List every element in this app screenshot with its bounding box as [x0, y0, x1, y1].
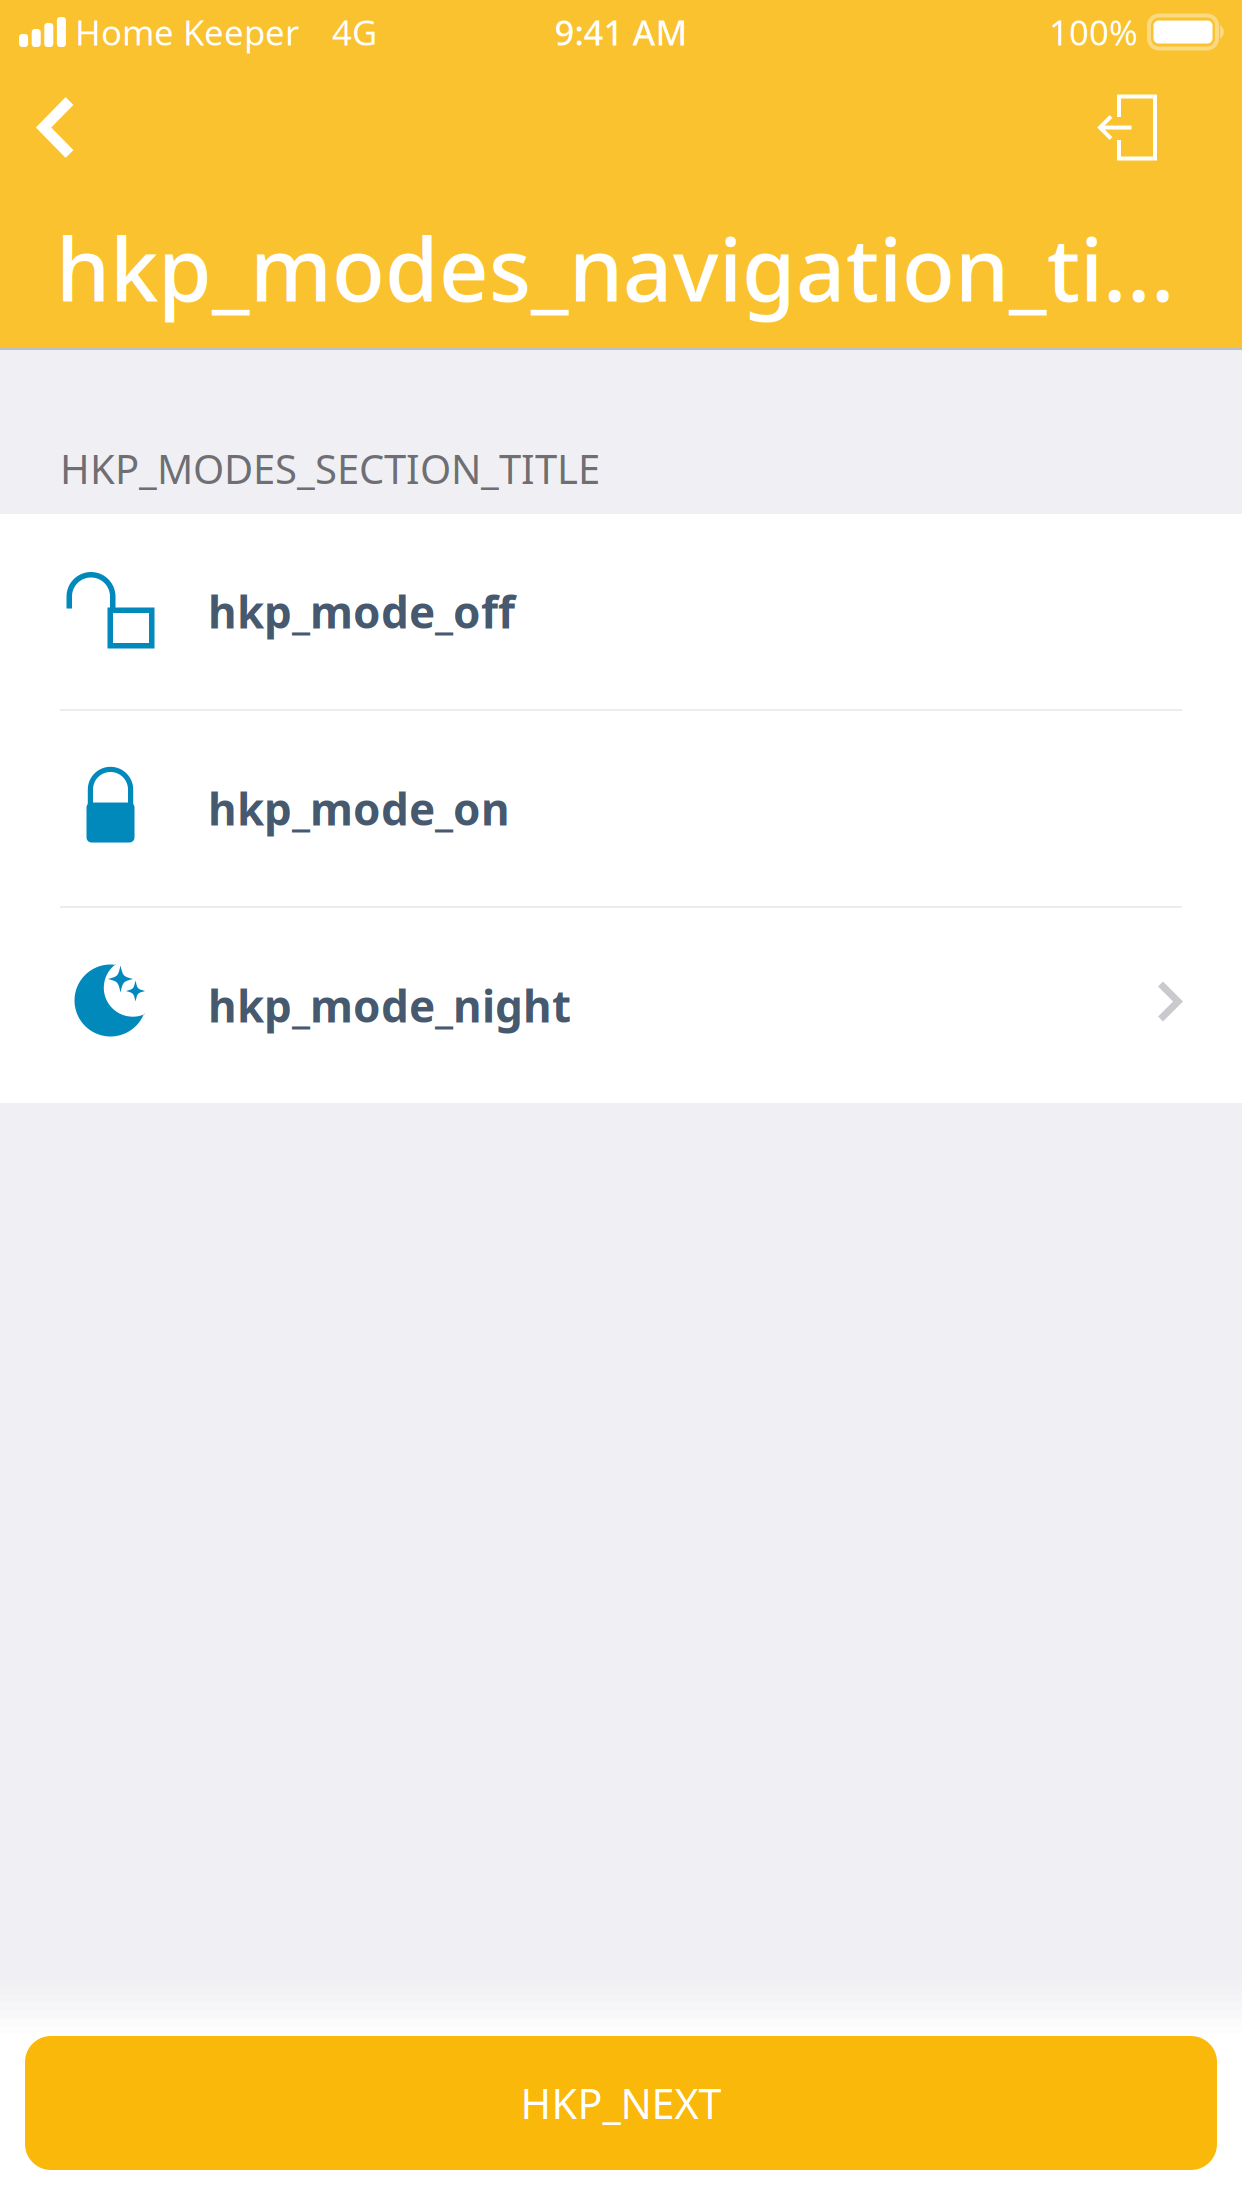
staticText: 100% [1049, 9, 1138, 55]
staticText: hkp_modes_navigation_ti... [56, 210, 1175, 325]
staticText: hkp_mode_on [208, 779, 510, 838]
button[interactable]: hkp_mode_off [0, 514, 1242, 709]
button[interactable]: hkp_mode_night [0, 908, 1242, 1103]
staticText: HKP_NEXT [520, 2076, 721, 2130]
button[interactable]: hkp_mode_on [0, 711, 1242, 906]
staticText: Home Keeper [75, 9, 299, 55]
button[interactable]: HKP_NEXT [25, 2036, 1217, 2170]
staticText: hkp_mode_night [208, 976, 571, 1035]
button[interactable]: Back [0, 75, 113, 179]
staticText: HKP_MODES_SECTION_TITLE [60, 442, 600, 495]
staticText: 4G [332, 9, 377, 55]
staticText: 9:41 AM [554, 9, 687, 55]
staticText: hkp_mode_off [208, 582, 515, 641]
button[interactable]: Log out [1056, 75, 1242, 179]
